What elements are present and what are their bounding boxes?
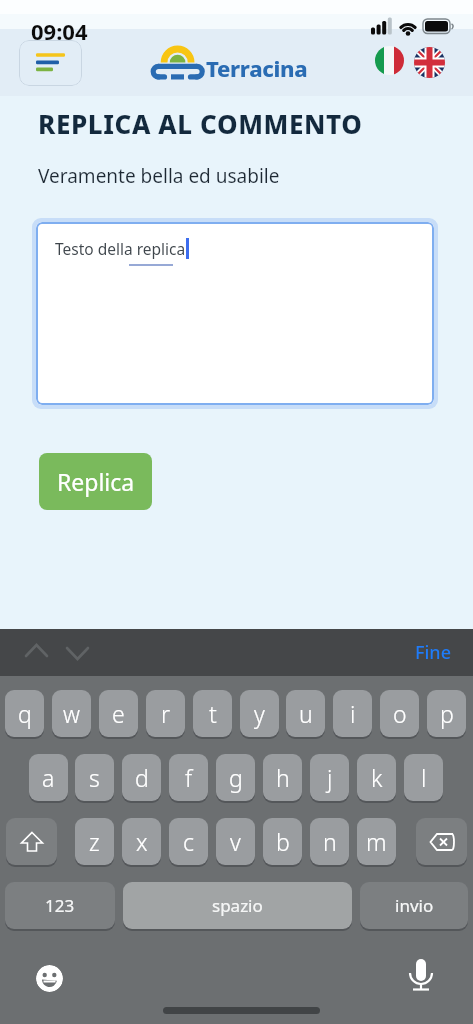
- staticText: b: [276, 826, 290, 857]
- staticText: v: [230, 826, 241, 857]
- button[interactable]: x: [122, 818, 161, 865]
- staticText: l: [421, 762, 427, 793]
- staticText: invio: [395, 894, 434, 917]
- staticText: i: [350, 698, 356, 729]
- button[interactable]: y: [240, 690, 279, 737]
- button[interactable]: v: [216, 818, 255, 865]
- button[interactable]: e: [99, 690, 138, 737]
- button[interactable]: q: [5, 690, 44, 737]
- button[interactable]: spazio: [123, 882, 352, 929]
- staticText: REPLICA AL COMMENTO: [38, 106, 363, 141]
- button[interactable]: f: [169, 754, 208, 801]
- staticText: u: [299, 698, 313, 729]
- button[interactable]: [36, 965, 63, 992]
- button[interactable]: s: [75, 754, 114, 801]
- staticText: m: [366, 826, 387, 857]
- staticText: q: [18, 698, 32, 729]
- button[interactable]: p: [427, 690, 466, 737]
- staticText: spazio: [212, 894, 263, 917]
- button[interactable]: [375, 46, 404, 75]
- button[interactable]: 123: [5, 882, 115, 929]
- button[interactable]: g: [216, 754, 255, 801]
- staticText: c: [183, 826, 194, 857]
- staticText: n: [323, 826, 337, 857]
- button[interactable]: l: [404, 754, 443, 801]
- staticText: f: [185, 762, 193, 793]
- staticText: w: [63, 698, 80, 729]
- button[interactable]: [19, 40, 82, 86]
- staticText: Terracina: [206, 53, 308, 83]
- button[interactable]: Fine: [415, 640, 451, 665]
- button[interactable]: u: [286, 690, 325, 737]
- button[interactable]: [6, 818, 57, 865]
- button[interactable]: i: [333, 690, 372, 737]
- button[interactable]: t: [193, 690, 232, 737]
- staticText: e: [112, 698, 125, 729]
- button[interactable]: c: [169, 818, 208, 865]
- staticText: r: [161, 698, 171, 729]
- staticText: o: [393, 698, 407, 729]
- button[interactable]: [414, 47, 445, 78]
- button[interactable]: n: [310, 818, 349, 865]
- staticText: Replica: [57, 466, 135, 497]
- button[interactable]: o: [380, 690, 419, 737]
- staticText: t: [209, 698, 217, 729]
- button[interactable]: invio: [360, 882, 468, 929]
- staticText: Testo della replica: [55, 238, 186, 259]
- button[interactable]: z: [75, 818, 114, 865]
- button[interactable]: Testo della replica: [36, 222, 434, 405]
- button[interactable]: w: [52, 690, 91, 737]
- staticText: d: [135, 762, 149, 793]
- staticText: k: [371, 762, 383, 793]
- staticText: z: [89, 826, 100, 857]
- button[interactable]: j: [310, 754, 349, 801]
- button[interactable]: [416, 818, 467, 865]
- button[interactable]: h: [263, 754, 302, 801]
- staticText: g: [229, 762, 243, 793]
- button[interactable]: r: [146, 690, 185, 737]
- staticText: a: [42, 762, 55, 793]
- staticText: 123: [45, 894, 75, 917]
- staticText: Veramente bella ed usabile: [38, 163, 280, 189]
- staticText: s: [89, 762, 100, 793]
- button[interactable]: [407, 957, 435, 995]
- button[interactable]: k: [357, 754, 396, 801]
- staticText: 09:04: [31, 16, 88, 46]
- staticText: p: [440, 698, 454, 729]
- button[interactable]: b: [263, 818, 302, 865]
- staticText: j: [327, 762, 333, 793]
- button[interactable]: m: [357, 818, 396, 865]
- staticText: x: [136, 826, 148, 857]
- staticText: y: [254, 698, 265, 729]
- staticText: Fine: [415, 640, 451, 665]
- button[interactable]: Replica: [39, 453, 152, 510]
- button[interactable]: a: [29, 754, 68, 801]
- button[interactable]: d: [122, 754, 161, 801]
- staticText: h: [276, 762, 290, 793]
